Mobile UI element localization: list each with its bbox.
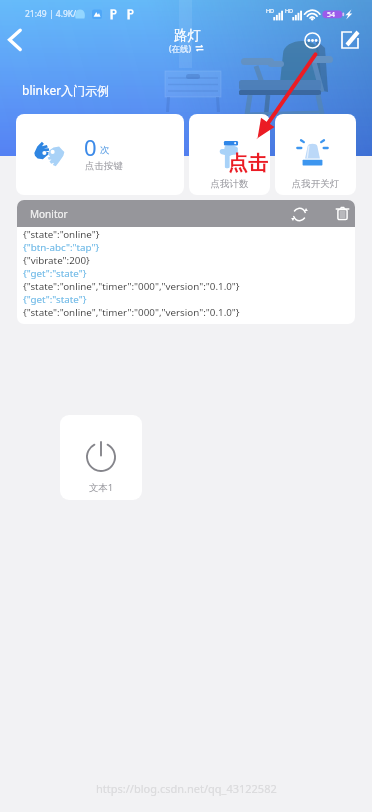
staticText: (在线) [169,43,192,55]
button[interactable]: 0 [16,114,184,195]
staticText: HD [285,7,294,14]
staticText: 点我开关灯 [275,178,356,190]
staticText: HD [266,7,275,14]
staticText: {"get":"state"} [23,267,87,280]
staticText: {"state":"online","timer":"000","version… [23,280,240,293]
button[interactable]: Refresh [291,206,308,223]
staticText: 次 [100,144,110,156]
staticText: 路灯 [174,27,201,44]
button[interactable]: 文本1 [60,415,142,500]
staticText: 点我计数 [189,178,270,190]
staticText: 0 [84,132,97,162]
button[interactable]: 点我计数 [189,114,270,195]
staticText: 文本1 [60,481,142,494]
staticText: {"state":"online","timer":"000","version… [23,306,240,319]
staticText: 21:49 | 4.9K/s [25,8,81,20]
staticText: {"btn-abc":"tap"} [23,241,100,254]
button[interactable]: More options [298,26,327,55]
staticText: https://blog.csdn.net/qq_43122582 [96,781,277,796]
staticText: blinker入门示例 [22,82,110,98]
staticText: {"vibrate":200} [23,254,90,267]
button[interactable]: Clear [334,205,351,222]
staticText: {"get":"state"} [23,293,87,306]
button[interactable]: 点我开关灯 [275,114,356,195]
staticText: 点击按键 [85,160,123,172]
staticText: 点击 [228,151,268,176]
staticText: {"state":"online"} [23,228,100,241]
staticText: Monitor [30,207,68,221]
staticText: 54 [327,10,336,20]
button[interactable]: Back [0,22,34,56]
button[interactable]: Edit [338,28,362,52]
